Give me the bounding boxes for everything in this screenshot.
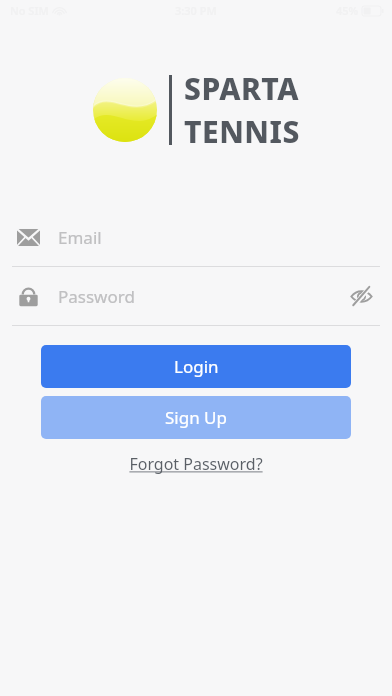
staticText: Email xyxy=(58,226,102,249)
button[interactable]: Password xyxy=(0,267,392,325)
button[interactable]: Sign Up xyxy=(41,396,351,439)
other: Password xyxy=(17,285,40,308)
staticText: TENNIS xyxy=(184,111,300,152)
button[interactable]: Show password xyxy=(344,279,378,313)
staticText: Login xyxy=(174,355,219,378)
staticText: Password xyxy=(58,285,135,308)
staticText: Forgot Password? xyxy=(129,453,263,475)
button[interactable]: Email xyxy=(0,208,392,266)
button[interactable]: Forgot Password? xyxy=(123,449,269,479)
staticText: Sign Up xyxy=(165,406,227,429)
other: Email xyxy=(17,226,40,249)
button[interactable]: Login xyxy=(41,345,351,388)
staticText: SPARTA xyxy=(184,68,300,109)
